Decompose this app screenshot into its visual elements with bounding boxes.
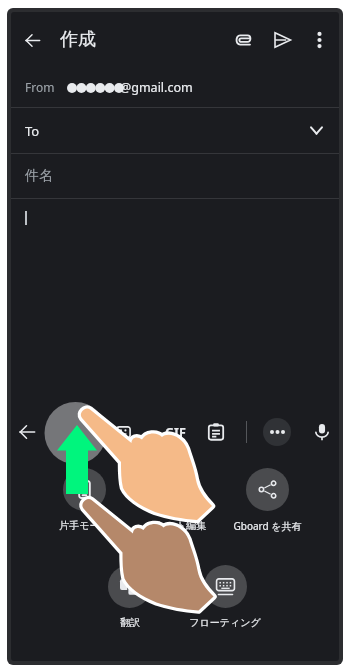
button[interactable]: Voice input [303,413,339,451]
button[interactable]: From [11,67,339,107]
button[interactable]: Text editing [130,468,220,534]
staticText: テキスト編集 [145,519,206,532]
button[interactable]: 件名 [11,154,339,198]
staticText: 作成 [60,28,96,51]
staticText: GIF [165,424,186,441]
staticText: フローティング [189,616,261,629]
button[interactable]: To [11,108,339,153]
staticText: 件名 [25,167,53,185]
staticText: From [25,79,55,95]
button[interactable]: Back [13,21,51,59]
button[interactable]: Clipboard [197,413,235,451]
button[interactable]: Attach file [226,23,260,57]
button[interactable]: Close toolbar [11,413,46,451]
button[interactable]: GIF [156,413,194,451]
button[interactable]: More options [302,23,336,57]
button[interactable]: Translate [84,565,174,631]
button[interactable]: Floating keyboard [180,565,270,631]
staticText: 片手モード [59,519,110,532]
button[interactable]: Share Gboard [222,468,312,534]
staticText: To [25,122,40,140]
button[interactable]: One-handed mode [39,468,129,534]
button[interactable]: More options [263,418,291,446]
staticText: 翻訳 [120,616,140,629]
staticText: @gmail.com [120,79,193,96]
button[interactable]: Emoji [104,413,142,451]
staticText: Gboard を共有 [233,519,302,533]
button[interactable]: Send [265,23,299,57]
